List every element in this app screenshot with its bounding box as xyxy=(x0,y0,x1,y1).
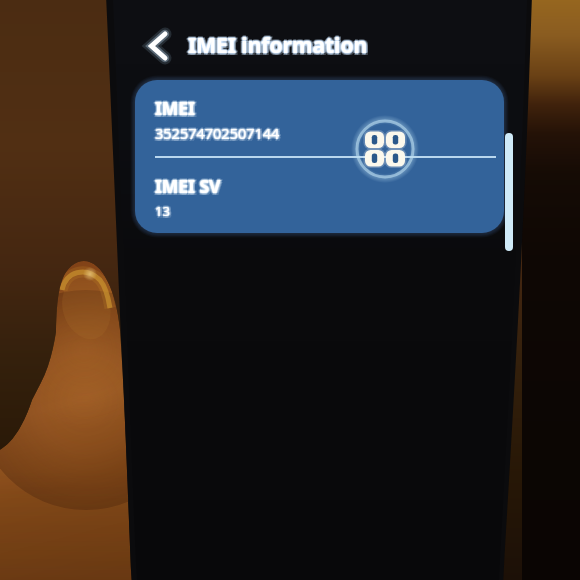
staticText: IMEI information xyxy=(186,31,366,60)
staticText: IMEI SV xyxy=(155,174,221,198)
staticText: 13 xyxy=(154,202,169,220)
staticText: IMEI xyxy=(155,95,195,119)
staticText: IMEI information xyxy=(187,30,367,59)
button[interactable]: IMEI xyxy=(135,80,503,156)
staticText: IMEI xyxy=(155,97,195,121)
staticText: 13 xyxy=(154,204,169,222)
staticText: 13 xyxy=(157,202,172,220)
staticText: IMEI SV xyxy=(157,173,223,197)
staticText: 13 xyxy=(155,202,170,220)
staticText: 352574702507144 xyxy=(155,123,280,143)
staticText: 13 xyxy=(154,201,169,219)
staticText: 352574702507144 xyxy=(154,122,279,142)
staticText: 13 xyxy=(155,204,170,222)
staticText: IMEI SV xyxy=(157,176,223,200)
staticText: IMEI information xyxy=(189,31,369,60)
staticText: IMEI SV xyxy=(155,172,221,196)
staticText: 352574702507144 xyxy=(155,125,280,145)
staticText: 352574702507144 xyxy=(155,124,280,144)
staticText: 352574702507144 xyxy=(154,125,279,145)
staticText: IMEI xyxy=(157,95,197,119)
staticText: IMEI information xyxy=(188,31,368,60)
staticText: IMEI information xyxy=(188,33,368,62)
staticText: 13 xyxy=(156,202,171,220)
staticText: IMEI xyxy=(154,96,194,120)
staticText: IMEI information xyxy=(188,30,368,59)
staticText: IMEI xyxy=(154,95,194,119)
staticText: IMEI SV xyxy=(154,173,220,197)
staticText: 352574702507144 xyxy=(153,123,278,143)
staticText: IMEI SV xyxy=(155,175,221,199)
staticText: 352574702507144 xyxy=(157,125,282,145)
staticText: IMEI SV xyxy=(155,176,221,200)
staticText: IMEI SV xyxy=(154,176,220,200)
staticText: IMEI xyxy=(155,98,195,122)
staticText: IMEI information xyxy=(187,31,367,60)
staticText: IMEI xyxy=(153,96,193,120)
staticText: 352574702507144 xyxy=(154,123,279,143)
staticText: IMEI xyxy=(155,94,195,118)
staticText: 13 xyxy=(157,201,172,219)
staticText: IMEI information xyxy=(187,33,367,62)
button[interactable]: Back xyxy=(135,23,181,69)
staticText: IMEI information xyxy=(190,33,370,62)
staticText: 352574702507144 xyxy=(157,123,282,143)
staticText: 352574702507144 xyxy=(155,121,280,141)
staticText: IMEI information xyxy=(188,32,368,61)
staticText: IMEI xyxy=(157,96,197,120)
staticText: 13 xyxy=(157,204,172,222)
staticText: 352574702507144 xyxy=(157,122,282,142)
staticText: IMEI SV xyxy=(155,173,221,197)
staticText: 13 xyxy=(153,202,168,220)
staticText: IMEI xyxy=(154,98,194,122)
button[interactable]: IMEI SV xyxy=(135,158,503,230)
staticText: IMEI SV xyxy=(156,174,222,198)
staticText: 352574702507144 xyxy=(156,123,281,143)
staticText: IMEI information xyxy=(188,29,368,58)
staticText: IMEI xyxy=(156,96,196,120)
staticText: IMEI SV xyxy=(154,174,220,198)
staticText: IMEI xyxy=(155,96,195,120)
staticText: 13 xyxy=(155,201,170,219)
staticText: IMEI information xyxy=(190,31,370,60)
staticText: IMEI SV xyxy=(153,174,219,198)
staticText: IMEI xyxy=(157,98,197,122)
staticText: IMEI information xyxy=(190,30,370,59)
staticText: 352574702507144 xyxy=(155,122,280,142)
staticText: 13 xyxy=(155,203,170,221)
staticText: IMEI SV xyxy=(157,174,223,198)
staticText: 13 xyxy=(155,200,170,218)
